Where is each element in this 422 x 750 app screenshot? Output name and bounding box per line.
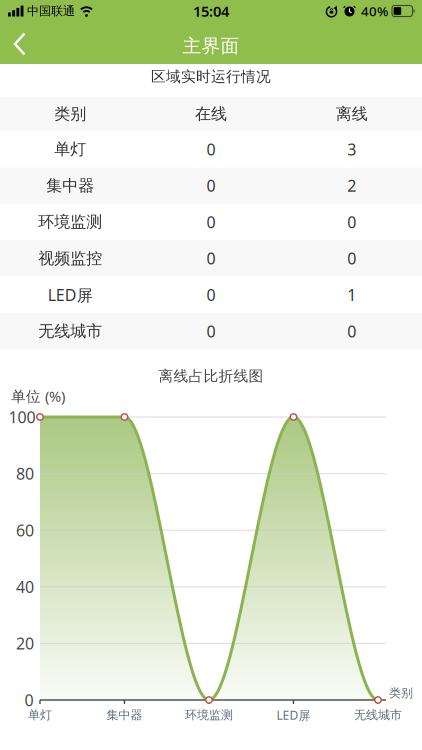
staticText: 1 [347,284,356,305]
staticText: 40 [16,576,34,597]
staticText: 0 [347,248,356,269]
staticText: 集中器 [106,708,142,722]
staticText: 类别 [54,104,86,124]
staticText: 2 [347,175,356,196]
staticText: 0 [206,139,215,160]
staticText: 类别 [389,686,413,700]
staticText: 主界面 [182,34,239,57]
staticText: 无线城市 [38,321,102,341]
staticText: LED屏 [276,707,310,723]
staticText: 80 [16,463,34,484]
staticText: 15:04 [193,1,229,21]
staticText: 0 [206,248,215,269]
staticText: 0 [206,211,215,233]
button[interactable]: Back [0,27,43,60]
staticText: 0 [206,284,215,305]
staticText: 环境监测 [185,708,233,722]
staticText: 无线城市 [354,708,402,722]
staticText: 0 [347,321,356,342]
staticText: 3 [347,139,356,160]
staticText: 视频监控 [38,249,102,268]
staticText: 单位 (%) [11,386,65,406]
staticText: 单灯 [54,139,86,159]
staticText: 离线 [336,104,368,124]
staticText: 单灯 [28,708,52,722]
staticText: 环境监测 [38,212,102,232]
staticText: 0 [347,211,356,233]
staticText: 100 [8,406,35,428]
staticText: 在线 [195,104,227,124]
staticText: 中国联通 [27,4,75,18]
staticText: 集中器 [46,176,94,195]
staticText: 20 [16,633,34,654]
staticText: 0 [206,321,215,342]
staticText: 60 [16,520,34,541]
staticText: 离线占比折线图 [158,367,263,385]
staticText: 40% [361,2,388,20]
staticText: 0 [206,175,215,196]
staticText: LED屏 [48,284,93,305]
staticText: 0 [24,689,33,711]
staticText: 区域实时运行情况 [151,67,271,85]
